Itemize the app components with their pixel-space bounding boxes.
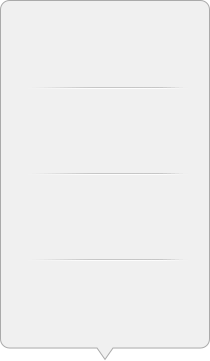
button[interactable]: Menu item 4 [0, 258, 210, 344]
button[interactable]: Menu item 1 [0, 0, 210, 86]
button[interactable]: Menu item 2 [0, 86, 210, 172]
button[interactable]: Menu item 3 [0, 172, 210, 258]
